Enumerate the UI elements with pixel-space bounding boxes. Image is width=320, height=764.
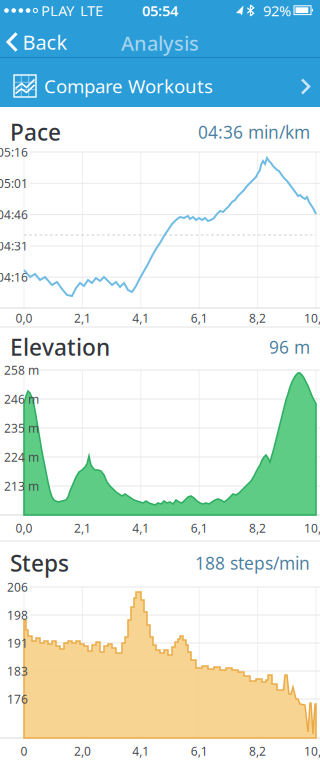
staticText: Back xyxy=(22,29,67,55)
staticText: 188 steps/min xyxy=(195,551,310,574)
staticText: 2,1 xyxy=(74,310,91,326)
staticText: Elevation xyxy=(10,332,110,362)
staticText: 198 xyxy=(7,607,28,623)
staticText: 92% xyxy=(263,1,291,20)
staticText: 4,1 xyxy=(132,743,149,759)
staticText: 6,1 xyxy=(191,520,208,536)
staticText: 213 m xyxy=(4,478,39,494)
staticText: 224 m xyxy=(4,449,39,465)
staticText: 4,1 xyxy=(132,310,149,326)
staticText: 176 xyxy=(7,691,28,707)
staticText: 206 xyxy=(7,579,28,595)
staticText: 05:54 xyxy=(142,1,178,20)
staticText: 04:36 min/km xyxy=(198,120,310,143)
staticText: Analysis xyxy=(121,30,199,56)
staticText: 10,2 xyxy=(304,743,320,759)
staticText: Compare Workouts xyxy=(44,74,213,98)
staticText: 183 xyxy=(7,663,28,679)
staticText: 235 m xyxy=(4,420,39,436)
staticText: Steps xyxy=(10,548,69,578)
staticText: 4,1 xyxy=(132,520,149,536)
staticText: 6,1 xyxy=(191,310,208,326)
staticText: 8,2 xyxy=(249,310,266,326)
staticText: 05:16 xyxy=(0,144,28,160)
staticText: 0 xyxy=(20,743,27,759)
staticText: 2,0 xyxy=(74,743,91,759)
staticText: 10,2 xyxy=(304,520,320,536)
staticText: 05:01 xyxy=(0,175,28,191)
staticText: 96 m xyxy=(269,335,310,358)
staticText: 0,0 xyxy=(15,310,32,326)
staticText: Pace xyxy=(10,117,61,147)
staticText: 246 m xyxy=(4,391,39,407)
staticText: 0,0 xyxy=(15,520,32,536)
staticText: 8,2 xyxy=(249,743,266,759)
button[interactable]: Back xyxy=(0,25,80,58)
button[interactable]: Compare Workouts xyxy=(0,58,320,107)
staticText: 04:31 xyxy=(0,238,28,254)
staticText: 10,2 xyxy=(304,310,320,326)
staticText: 191 xyxy=(7,635,28,651)
staticText: 258 m xyxy=(4,362,39,378)
staticText: 04:16 xyxy=(0,269,28,285)
staticText: LTE xyxy=(80,1,103,20)
staticText: PLAY xyxy=(41,1,74,20)
staticText: 2,1 xyxy=(74,520,91,536)
staticText: 6,1 xyxy=(191,743,208,759)
staticText: 04:46 xyxy=(0,207,28,222)
staticText: 8,2 xyxy=(249,520,266,536)
